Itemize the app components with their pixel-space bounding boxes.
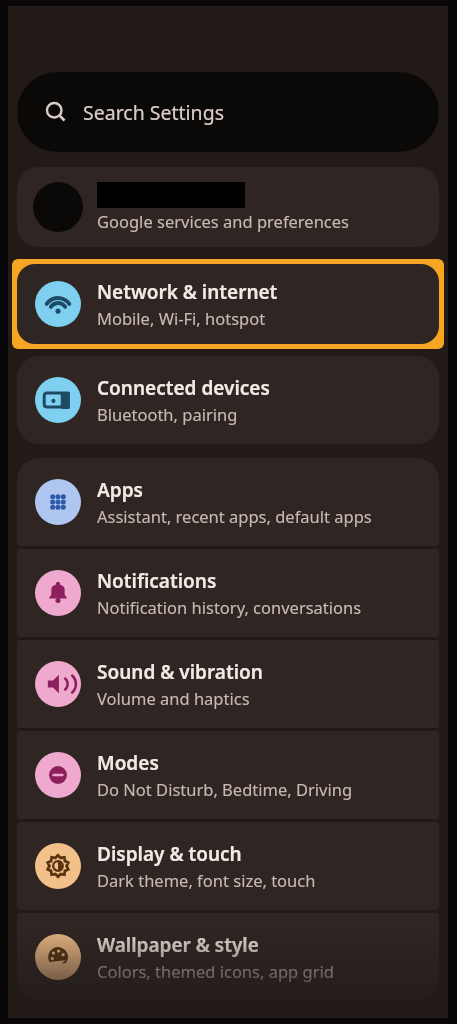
button[interactable]: Modes [17, 731, 439, 819]
button[interactable]: Sound & vibration [17, 640, 439, 728]
button[interactable]: Google services and preferences [17, 167, 439, 247]
button[interactable]: Display & touch [17, 822, 439, 910]
staticText: Wallpaper & style [97, 932, 259, 958]
staticText: Bluetooth, pairing [97, 403, 238, 425]
button[interactable]: Connected devices [17, 356, 439, 444]
button[interactable]: Wallpaper & style [17, 913, 439, 1001]
button[interactable]: Apps [17, 458, 439, 546]
staticText: Assistant, recent apps, default apps [97, 505, 372, 527]
staticText: Dark theme, font size, touch [97, 869, 316, 891]
staticText: Notifications [97, 568, 217, 594]
staticText: Do Not Disturb, Bedtime, Driving [97, 778, 353, 800]
staticText: Network & internet [97, 279, 278, 305]
staticText: Apps [97, 477, 143, 503]
staticText: Connected devices [97, 375, 270, 401]
staticText: Sound & vibration [97, 659, 263, 685]
button[interactable]: Network & internet [12, 259, 444, 349]
staticText: Notification history, conversations [97, 596, 362, 618]
staticText: Modes [97, 750, 159, 776]
button[interactable]: Search Settings [17, 72, 439, 152]
staticText: Search Settings [83, 99, 224, 126]
staticText: Colors, themed icons, app grid [97, 960, 334, 982]
button[interactable]: Notifications [17, 549, 439, 637]
staticText: Volume and haptics [97, 687, 250, 709]
staticText: Google services and preferences [97, 210, 349, 232]
staticText: Mobile, Wi-Fi, hotspot [97, 307, 266, 329]
staticText: Display & touch [97, 841, 242, 867]
